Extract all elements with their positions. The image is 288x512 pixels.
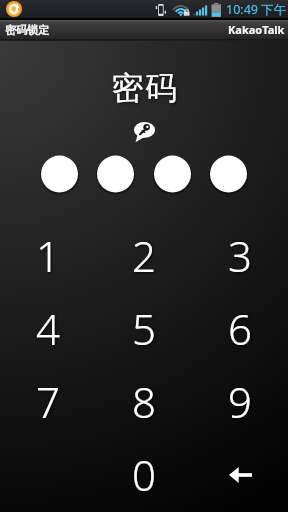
staticText: 密码 xyxy=(1,68,288,108)
staticText: 4 xyxy=(36,300,60,357)
staticText: 9 xyxy=(228,373,252,430)
staticText: 10:49 下午 xyxy=(226,1,287,18)
button[interactable]: 5 xyxy=(96,292,192,365)
button[interactable]: 2 xyxy=(96,219,192,292)
button[interactable]: 7 xyxy=(0,365,96,438)
button[interactable]: 0 xyxy=(96,438,192,511)
staticText: 2 xyxy=(132,227,156,284)
button[interactable]: 6 xyxy=(192,292,288,365)
button[interactable]: 密码锁定 xyxy=(0,20,288,39)
staticText: 1 xyxy=(36,227,60,284)
staticText: 5 xyxy=(132,300,156,357)
staticText: 6 xyxy=(228,300,252,357)
button[interactable]: 4 xyxy=(0,292,96,365)
button[interactable]: 3 xyxy=(192,219,288,292)
staticText: 7 xyxy=(36,373,60,430)
button[interactable]: Backspace xyxy=(192,438,288,511)
staticText: 8 xyxy=(132,373,156,430)
staticText: 密码锁定 xyxy=(5,23,49,37)
button[interactable]: 1 xyxy=(0,219,96,292)
staticText: KakaoTalk xyxy=(228,22,285,37)
button[interactable]: 8 xyxy=(96,365,192,438)
other: KakaoTalk notification xyxy=(6,1,22,17)
staticText: 3 xyxy=(228,227,252,284)
button[interactable]: 9 xyxy=(192,365,288,438)
staticText: 0 xyxy=(132,446,156,503)
